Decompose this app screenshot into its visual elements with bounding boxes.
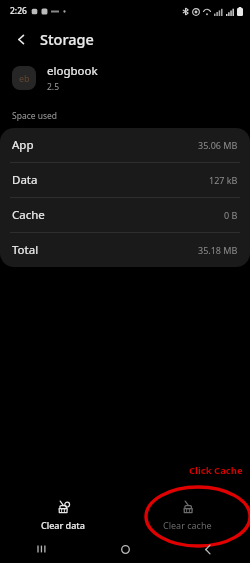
staticText: 127 kB xyxy=(209,174,238,186)
staticText: 35.06 MB xyxy=(198,139,238,151)
staticText: Space used xyxy=(12,110,58,122)
button[interactable]: Clear data xyxy=(0,498,125,533)
staticText: eb xyxy=(19,72,30,84)
staticText: App xyxy=(12,137,34,153)
staticText: 2:26 xyxy=(10,5,27,17)
button[interactable]: Back xyxy=(10,28,32,50)
staticText: 0 B xyxy=(224,209,238,221)
staticText: Clear cache xyxy=(163,519,212,531)
staticText: 35.18 MB xyxy=(198,244,238,256)
staticText: elogbook xyxy=(47,63,98,79)
button[interactable]: Recent apps xyxy=(12,539,72,559)
staticText: Total xyxy=(12,242,39,258)
staticText: Cache xyxy=(12,207,45,223)
staticText: Data xyxy=(12,172,38,188)
button[interactable]: Cache xyxy=(0,198,250,232)
button[interactable]: Data xyxy=(0,163,250,197)
staticText: 2.5 xyxy=(47,81,60,93)
staticText: Click Cache xyxy=(189,464,243,477)
button[interactable]: App xyxy=(0,128,250,162)
staticText: Storage xyxy=(40,29,94,49)
button[interactable]: Clear cache xyxy=(125,498,250,533)
button[interactable]: eb xyxy=(0,56,250,100)
button[interactable]: Back xyxy=(178,539,238,559)
button[interactable]: Home xyxy=(95,539,155,559)
staticText: Clear data xyxy=(41,519,85,531)
button[interactable]: Total xyxy=(0,233,250,267)
